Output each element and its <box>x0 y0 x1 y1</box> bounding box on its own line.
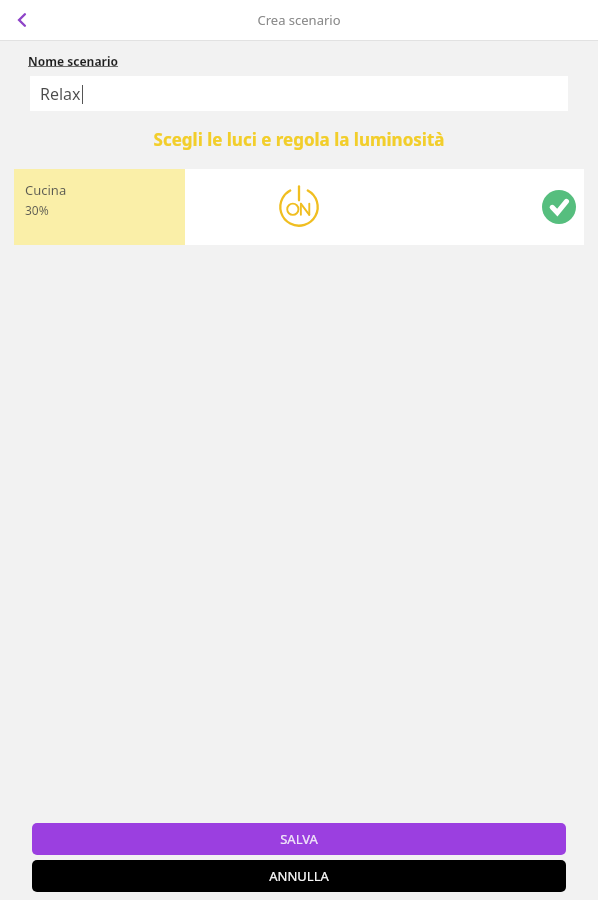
staticText: Nome scenario <box>28 53 119 69</box>
staticText: ANNULLA <box>269 867 329 885</box>
button[interactable]: Selezionata <box>541 189 577 225</box>
staticText: 30% <box>25 202 49 218</box>
staticText: SALVA <box>280 830 318 848</box>
staticText: Crea scenario <box>257 11 341 29</box>
staticText: Scegli le luci e regola la luminosità <box>0 128 598 151</box>
button[interactable]: Relax <box>30 76 568 111</box>
button[interactable]: ANNULLA <box>32 860 566 892</box>
staticText: Cucina <box>25 181 67 199</box>
button[interactable]: Cucina <box>14 169 584 245</box>
button[interactable]: Accendi luce <box>275 183 323 231</box>
staticText: Relax <box>40 83 81 105</box>
button[interactable]: Indietro <box>0 0 44 40</box>
button[interactable]: SALVA <box>32 823 566 855</box>
